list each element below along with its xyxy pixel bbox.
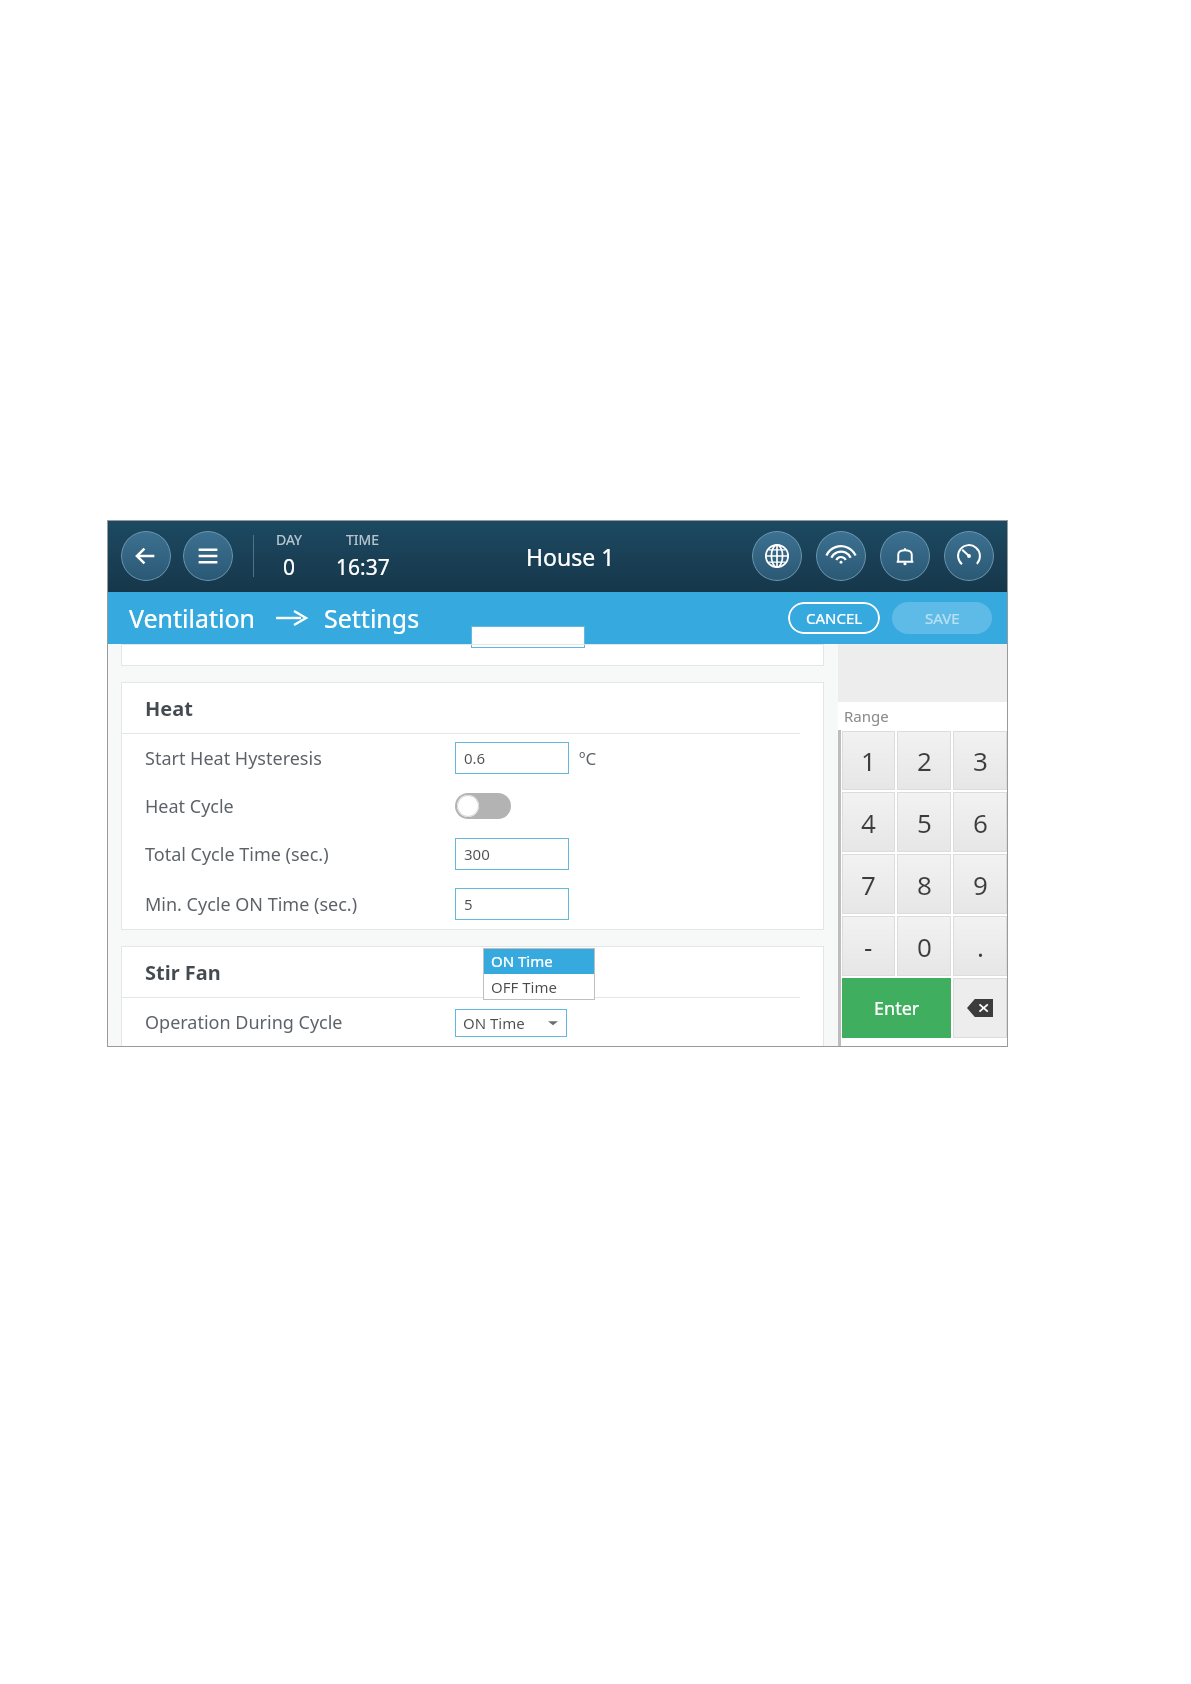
staticText: ºC [579, 747, 597, 770]
staticText: Stir Fan [145, 959, 221, 986]
button[interactable]: Ventilation [127, 597, 258, 639]
staticText: 300 [464, 844, 490, 864]
staticText: 16:37 [336, 553, 390, 582]
button[interactable]: . [953, 916, 1007, 976]
button[interactable]: Start Heat Hysteresis [121, 734, 824, 782]
button[interactable]: Menu [183, 531, 233, 581]
button[interactable]: 4 [842, 792, 895, 852]
staticText: Enter [874, 996, 920, 1021]
button[interactable]: 0.6 [455, 742, 569, 774]
staticText: 1 [861, 743, 876, 778]
button[interactable]: 5 [455, 888, 569, 920]
staticText: SAVE [925, 608, 960, 628]
button[interactable]: OFF Time [483, 974, 595, 1000]
button[interactable]: Back [121, 531, 171, 581]
staticText: TIME [346, 530, 380, 549]
staticText: ON Time [463, 1013, 525, 1033]
button[interactable]: Total Cycle Time (sec.) [121, 830, 824, 878]
button[interactable]: Min. Cycle ON Time (sec.) [121, 878, 824, 930]
button[interactable]: 9 [953, 854, 1007, 914]
staticText: CANCEL [806, 608, 863, 628]
staticText: 0 [283, 553, 296, 582]
staticText: 9 [973, 867, 988, 902]
button[interactable]: Wi-Fi [816, 531, 866, 581]
staticText: Heat Cycle [145, 794, 234, 819]
button[interactable]: ON Time [455, 1009, 567, 1037]
staticText: Settings [324, 601, 420, 635]
button[interactable]: Language [752, 531, 802, 581]
staticText: 4 [861, 805, 876, 840]
button[interactable]: 3 [953, 731, 1007, 790]
staticText: 2 [917, 743, 932, 778]
button[interactable]: Enter [842, 978, 951, 1038]
staticText: 3 [973, 743, 988, 778]
staticText: 5 [464, 894, 473, 914]
staticText: House 1 [526, 541, 615, 572]
staticText: ON Time [491, 951, 553, 971]
button[interactable]: 8 [897, 854, 951, 914]
button[interactable]: SAVE [892, 602, 992, 634]
staticText: 6 [973, 805, 988, 840]
staticText: . [977, 929, 984, 964]
button[interactable]: 6 [953, 792, 1007, 852]
staticText: - [864, 929, 873, 964]
staticText: OFF Time [491, 977, 557, 997]
button[interactable]: ON Time [483, 948, 595, 974]
button[interactable]: Dashboard [944, 531, 994, 581]
staticText: 0 [917, 929, 932, 964]
button[interactable]: 0 [897, 916, 951, 976]
staticText: Start Heat Hysteresis [145, 746, 322, 771]
button[interactable]: 300 [455, 838, 569, 870]
staticText: 8 [917, 867, 932, 902]
staticText: DAY [276, 530, 302, 549]
button[interactable]: Settings [322, 597, 422, 639]
button[interactable]: Alarms [880, 531, 930, 581]
staticText: Heat [145, 695, 193, 722]
button[interactable]: 1 [842, 731, 895, 790]
button[interactable]: 7 [842, 854, 895, 914]
button[interactable]: - [842, 916, 895, 976]
button[interactable]: Heat Cycle toggle [455, 793, 511, 819]
staticText: Operation During Cycle [145, 1010, 343, 1035]
button[interactable]: 5 [897, 792, 951, 852]
staticText: Total Cycle Time (sec.) [145, 842, 329, 867]
button[interactable]: Backspace [953, 978, 1007, 1038]
button[interactable]: Heat Cycle [121, 782, 824, 830]
button[interactable]: 2 [897, 731, 951, 790]
staticText: 5 [917, 805, 932, 840]
staticText: 7 [861, 867, 876, 902]
staticText: Ventilation [129, 601, 256, 635]
button[interactable]: CANCEL [788, 602, 880, 634]
staticText: Range [844, 706, 889, 726]
staticText: 0.6 [464, 748, 486, 768]
staticText: Min. Cycle ON Time (sec.) [145, 892, 358, 917]
